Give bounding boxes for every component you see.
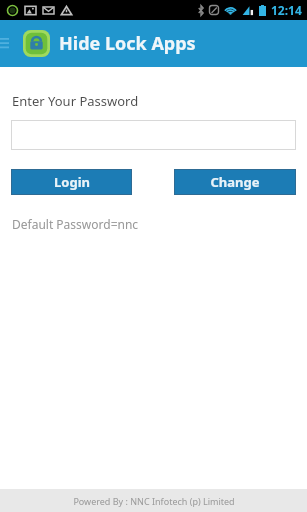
button[interactable]: Open navigation drawer — [0, 20, 9, 67]
staticText: Login — [54, 173, 90, 191]
staticText: Default Password=nnc — [12, 216, 139, 232]
staticText: Powered By : NNC Infotech (p) Limited — [73, 495, 235, 507]
button[interactable]: Login — [11, 169, 132, 195]
staticText: Change — [210, 173, 260, 191]
staticText: Enter Your Password — [12, 92, 139, 110]
staticText: Hide Lock Apps — [59, 31, 196, 56]
button[interactable] — [11, 120, 296, 150]
button[interactable]: Change — [174, 169, 296, 195]
staticText: 12:14 — [271, 2, 302, 18]
